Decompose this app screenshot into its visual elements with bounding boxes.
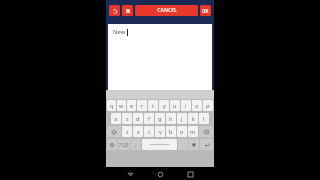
button[interactable]: Settings <box>107 139 117 150</box>
button[interactable]: h <box>166 113 176 124</box>
button[interactable]: Enter <box>200 139 213 150</box>
button[interactable]: q <box>107 100 116 111</box>
staticText: b <box>169 128 173 135</box>
button[interactable]: a <box>111 113 121 124</box>
staticText: x <box>137 128 140 135</box>
staticText: New <box>113 28 126 36</box>
button[interactable]: b <box>166 126 176 137</box>
button[interactable]: f <box>144 113 154 124</box>
staticText: k <box>192 115 195 122</box>
staticText: , <box>135 142 137 148</box>
staticText: q <box>110 102 114 109</box>
button[interactable]: c <box>144 126 154 137</box>
staticText: f <box>148 115 150 122</box>
staticText: r <box>141 102 144 109</box>
button[interactable]: t <box>148 100 158 111</box>
staticText: w <box>119 102 124 109</box>
button[interactable]: , <box>131 139 141 150</box>
button[interactable]: m <box>188 126 198 137</box>
staticText: j <box>181 115 183 122</box>
staticText: CANCEL <box>157 7 177 14</box>
button[interactable]: y <box>159 100 169 111</box>
staticText: l <box>203 115 205 122</box>
button[interactable]: CANCEL <box>135 5 198 16</box>
button[interactable]: v <box>155 126 165 137</box>
button[interactable]: i <box>181 100 191 111</box>
staticText: . <box>182 142 184 148</box>
button[interactable]: o <box>192 100 202 111</box>
staticText: d <box>136 115 140 122</box>
button[interactable]: u <box>170 100 180 111</box>
button[interactable]: d <box>133 113 143 124</box>
staticText: v <box>159 128 162 135</box>
button[interactable]: x <box>133 126 143 137</box>
button[interactable]: Back <box>124 168 136 180</box>
button[interactable]: g <box>155 113 165 124</box>
staticText: c <box>148 128 151 135</box>
staticText: a <box>114 115 118 122</box>
button[interactable]: w <box>117 100 126 111</box>
button[interactable]: z <box>122 126 132 137</box>
button[interactable]: n <box>177 126 187 137</box>
staticText: s <box>126 115 129 122</box>
staticText: t <box>152 102 154 109</box>
button[interactable]: l <box>199 113 209 124</box>
button[interactable]: ● <box>189 139 199 150</box>
button[interactable]: e <box>127 100 136 111</box>
staticText: i <box>185 102 187 109</box>
staticText: o <box>195 102 199 109</box>
button[interactable]: OK <box>200 5 211 16</box>
button[interactable]: p <box>203 100 213 111</box>
button[interactable]: ?123 <box>118 139 130 150</box>
staticText: h <box>169 115 173 122</box>
staticText: u <box>173 102 177 109</box>
staticText: p <box>206 102 210 109</box>
staticText: m <box>190 128 196 135</box>
button[interactable]: Home <box>154 168 166 180</box>
staticText: e <box>130 102 134 109</box>
staticText: ● <box>192 142 196 147</box>
button[interactable]: r <box>137 100 147 111</box>
button[interactable]: Shift <box>107 126 121 137</box>
staticText: OK <box>202 8 209 14</box>
button[interactable]: s <box>122 113 132 124</box>
staticText: z <box>126 128 129 135</box>
button[interactable]: Undo <box>109 5 120 16</box>
button[interactable]: k <box>188 113 198 124</box>
button[interactable]: Stop <box>122 5 133 16</box>
button[interactable]: j <box>177 113 187 124</box>
staticText: y <box>163 102 166 109</box>
button[interactable]: Backspace <box>199 126 213 137</box>
staticText: g <box>158 115 162 122</box>
button[interactable]: Space <box>142 139 177 150</box>
button[interactable]: Recents <box>184 168 196 180</box>
staticText: n <box>180 128 184 135</box>
staticText: ?123 <box>119 142 129 148</box>
